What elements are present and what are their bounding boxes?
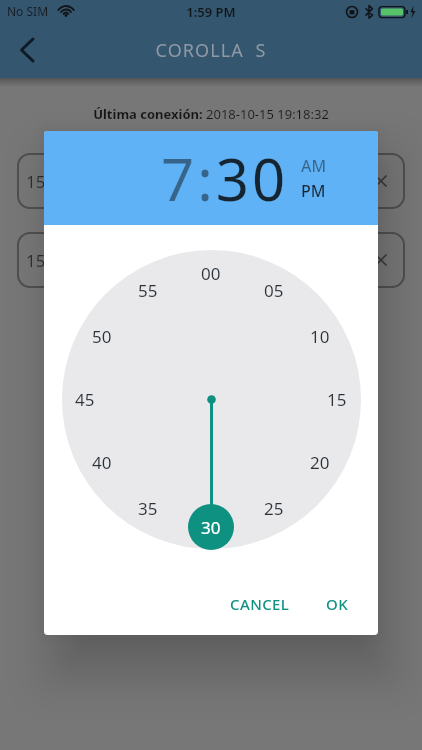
staticText: 15	[327, 388, 347, 411]
staticText: 45	[75, 388, 95, 411]
button[interactable]: 00	[191, 261, 231, 285]
button[interactable]: AM	[301, 155, 327, 177]
staticText: 50	[92, 325, 112, 348]
button[interactable]: 35	[128, 496, 168, 520]
button[interactable]: 30	[188, 504, 234, 550]
staticText: No SIM	[7, 3, 49, 19]
staticText: 15	[26, 249, 46, 272]
button[interactable]: 50	[82, 324, 122, 348]
button[interactable]: 15	[17, 153, 405, 209]
button[interactable]	[14, 36, 42, 64]
button[interactable]: 55	[128, 278, 168, 302]
staticText: OK	[326, 594, 349, 614]
button[interactable]: 40	[82, 450, 122, 474]
button[interactable]: 15	[317, 387, 357, 411]
staticText: 05	[264, 279, 284, 302]
button[interactable]: PM	[301, 180, 326, 202]
button[interactable]: 7:30	[161, 139, 289, 218]
staticText: 35	[138, 497, 158, 520]
button[interactable]: OK	[318, 586, 357, 622]
staticText: 25	[264, 497, 284, 520]
staticText: CANCEL	[230, 594, 290, 614]
staticText: 00	[201, 262, 221, 285]
button[interactable]: 15	[17, 232, 405, 288]
staticText: 40	[92, 451, 112, 474]
staticText: 1:59 PM	[0, 3, 422, 21]
staticText: 20	[310, 451, 330, 474]
button[interactable]: 05	[254, 278, 294, 302]
staticText: 10	[310, 325, 330, 348]
button[interactable]: CANCEL	[222, 586, 298, 622]
staticText: 55	[138, 279, 158, 302]
button[interactable]: 10	[300, 324, 340, 348]
staticText: 30	[201, 516, 221, 539]
button[interactable]: 20	[300, 450, 340, 474]
staticText: Última conexión: 2018-10-15 19:18:32	[0, 105, 422, 123]
button[interactable]: 45	[65, 387, 105, 411]
staticText: 15	[26, 170, 46, 193]
button[interactable]: 25	[254, 496, 294, 520]
staticText: COROLLA S	[0, 38, 422, 63]
